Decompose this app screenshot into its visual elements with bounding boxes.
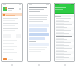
- button[interactable]: [29, 7, 49, 12]
- button[interactable]: [54, 54, 75, 57]
- button[interactable]: [54, 48, 75, 51]
- button[interactable]: [3, 43, 21, 44]
- button[interactable]: [54, 33, 75, 36]
- button[interactable]: [3, 28, 21, 31]
- button[interactable]: [2, 13, 22, 16]
- button[interactable]: [54, 57, 75, 60]
- button[interactable]: [3, 46, 21, 47]
- button[interactable]: [54, 45, 75, 48]
- button[interactable]: [54, 24, 75, 27]
- button[interactable]: [3, 18, 21, 21]
- button[interactable]: [54, 51, 75, 54]
- button[interactable]: [3, 40, 21, 41]
- button[interactable]: [54, 39, 75, 42]
- button[interactable]: [54, 15, 75, 17]
- button[interactable]: Primary action: [3, 58, 7, 60]
- button[interactable]: App header: [3, 7, 21, 11]
- button[interactable]: [54, 21, 75, 24]
- button[interactable]: [54, 18, 75, 21]
- button[interactable]: [54, 36, 75, 39]
- button[interactable]: Header: [54, 3, 75, 13]
- button[interactable]: [54, 30, 75, 33]
- button[interactable]: [3, 49, 21, 50]
- button[interactable]: [3, 52, 21, 53]
- button[interactable]: [3, 23, 21, 26]
- button[interactable]: [54, 42, 75, 45]
- button[interactable]: [54, 27, 75, 30]
